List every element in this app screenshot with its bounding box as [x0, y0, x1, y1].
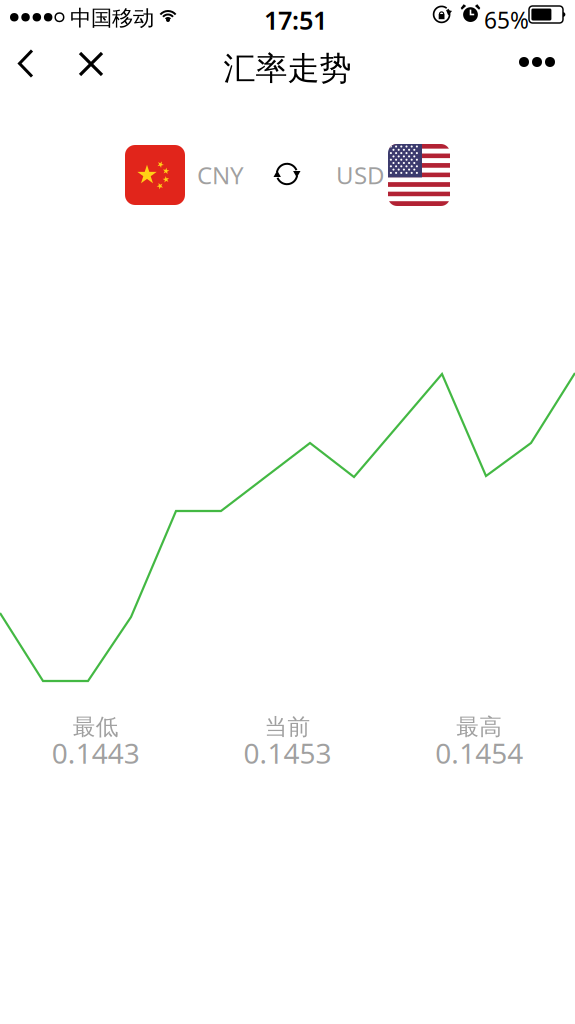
staticText: 中国移动 [70, 5, 154, 31]
staticText: 最高 [456, 713, 502, 741]
staticText: 当前 [264, 713, 310, 741]
button[interactable]: Close [63, 36, 119, 92]
button[interactable]: USD [336, 140, 450, 210]
staticText: 65% [484, 5, 529, 35]
staticText: 最低 [73, 713, 119, 741]
button[interactable]: More options [503, 36, 571, 88]
staticText: 0.1443 [52, 734, 140, 772]
staticText: USD [336, 159, 385, 191]
staticText: 汇率走势 [223, 49, 351, 88]
staticText: 0.1454 [435, 734, 523, 772]
button[interactable]: Swap currencies [263, 150, 311, 198]
staticText: CNY [197, 159, 244, 191]
staticText: 0.1453 [243, 734, 331, 772]
button[interactable]: CNY [125, 141, 244, 209]
staticText: 17:51 [264, 3, 327, 37]
button[interactable]: Back [2, 36, 50, 91]
